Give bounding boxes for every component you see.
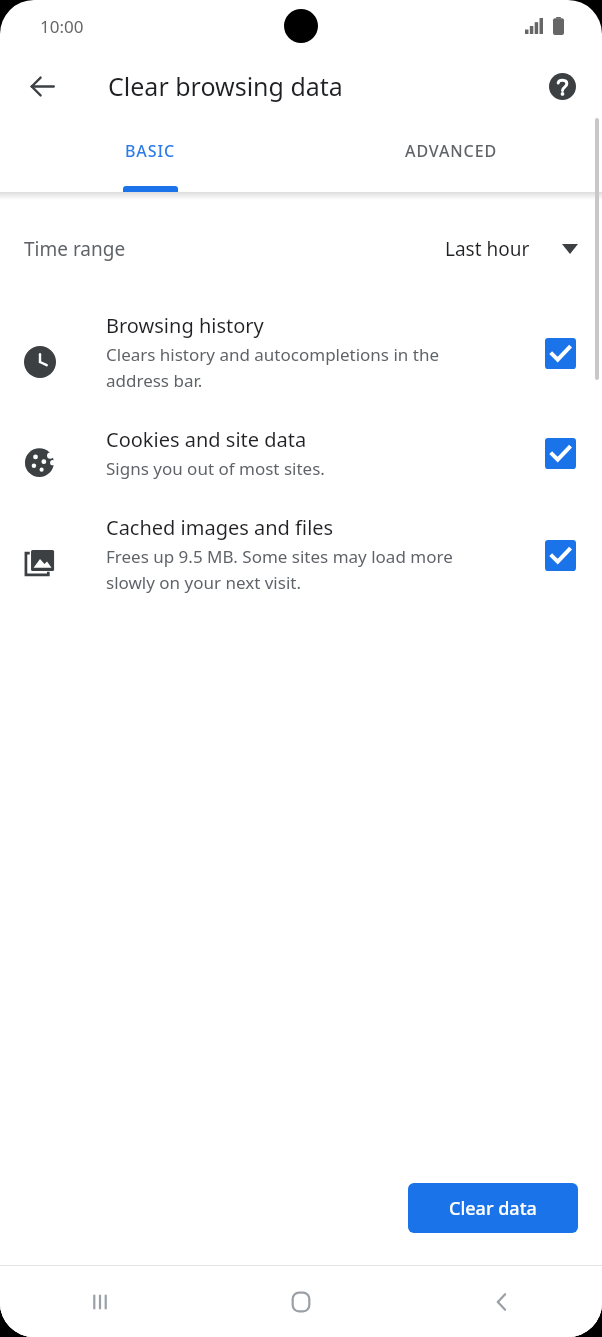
button[interactable]: Help bbox=[538, 62, 586, 110]
staticText: ADVANCED bbox=[405, 140, 498, 162]
staticText: Clear browsing data bbox=[108, 69, 343, 103]
staticText: 10:00 bbox=[40, 15, 84, 38]
staticText: Cookies and site data bbox=[106, 426, 307, 453]
button[interactable]: BASIC bbox=[0, 120, 301, 192]
button[interactable]: Cookies and site data bbox=[0, 420, 602, 484]
button[interactable]: Recents bbox=[0, 1266, 200, 1337]
staticText: Time range bbox=[24, 236, 126, 262]
button[interactable]: Browsing history bbox=[0, 306, 602, 396]
staticText: Signs you out of most sites. bbox=[106, 457, 325, 480]
staticText: Last hour bbox=[445, 236, 530, 262]
button[interactable]: Clear data bbox=[408, 1183, 578, 1233]
button[interactable]: ADVANCED bbox=[301, 120, 602, 192]
button[interactable]: Home bbox=[200, 1266, 401, 1337]
button[interactable]: Back bbox=[401, 1266, 602, 1337]
other: Cookies and site data bbox=[540, 438, 580, 478]
other: Browsing history bbox=[540, 338, 580, 378]
staticText: Frees up 9.5 MB. Some sites may load mor… bbox=[106, 545, 453, 594]
button[interactable]: Time range bbox=[0, 220, 602, 278]
staticText: Browsing history bbox=[106, 312, 264, 339]
staticText: Clear data bbox=[449, 1196, 537, 1221]
staticText: BASIC bbox=[125, 140, 176, 162]
staticText: Clears history and autocompletions in th… bbox=[106, 343, 439, 392]
other: Cached images and files bbox=[540, 540, 580, 580]
staticText: Cached images and files bbox=[106, 514, 334, 541]
button[interactable]: Back bbox=[18, 62, 66, 110]
button[interactable]: Cached images and files bbox=[0, 508, 602, 598]
